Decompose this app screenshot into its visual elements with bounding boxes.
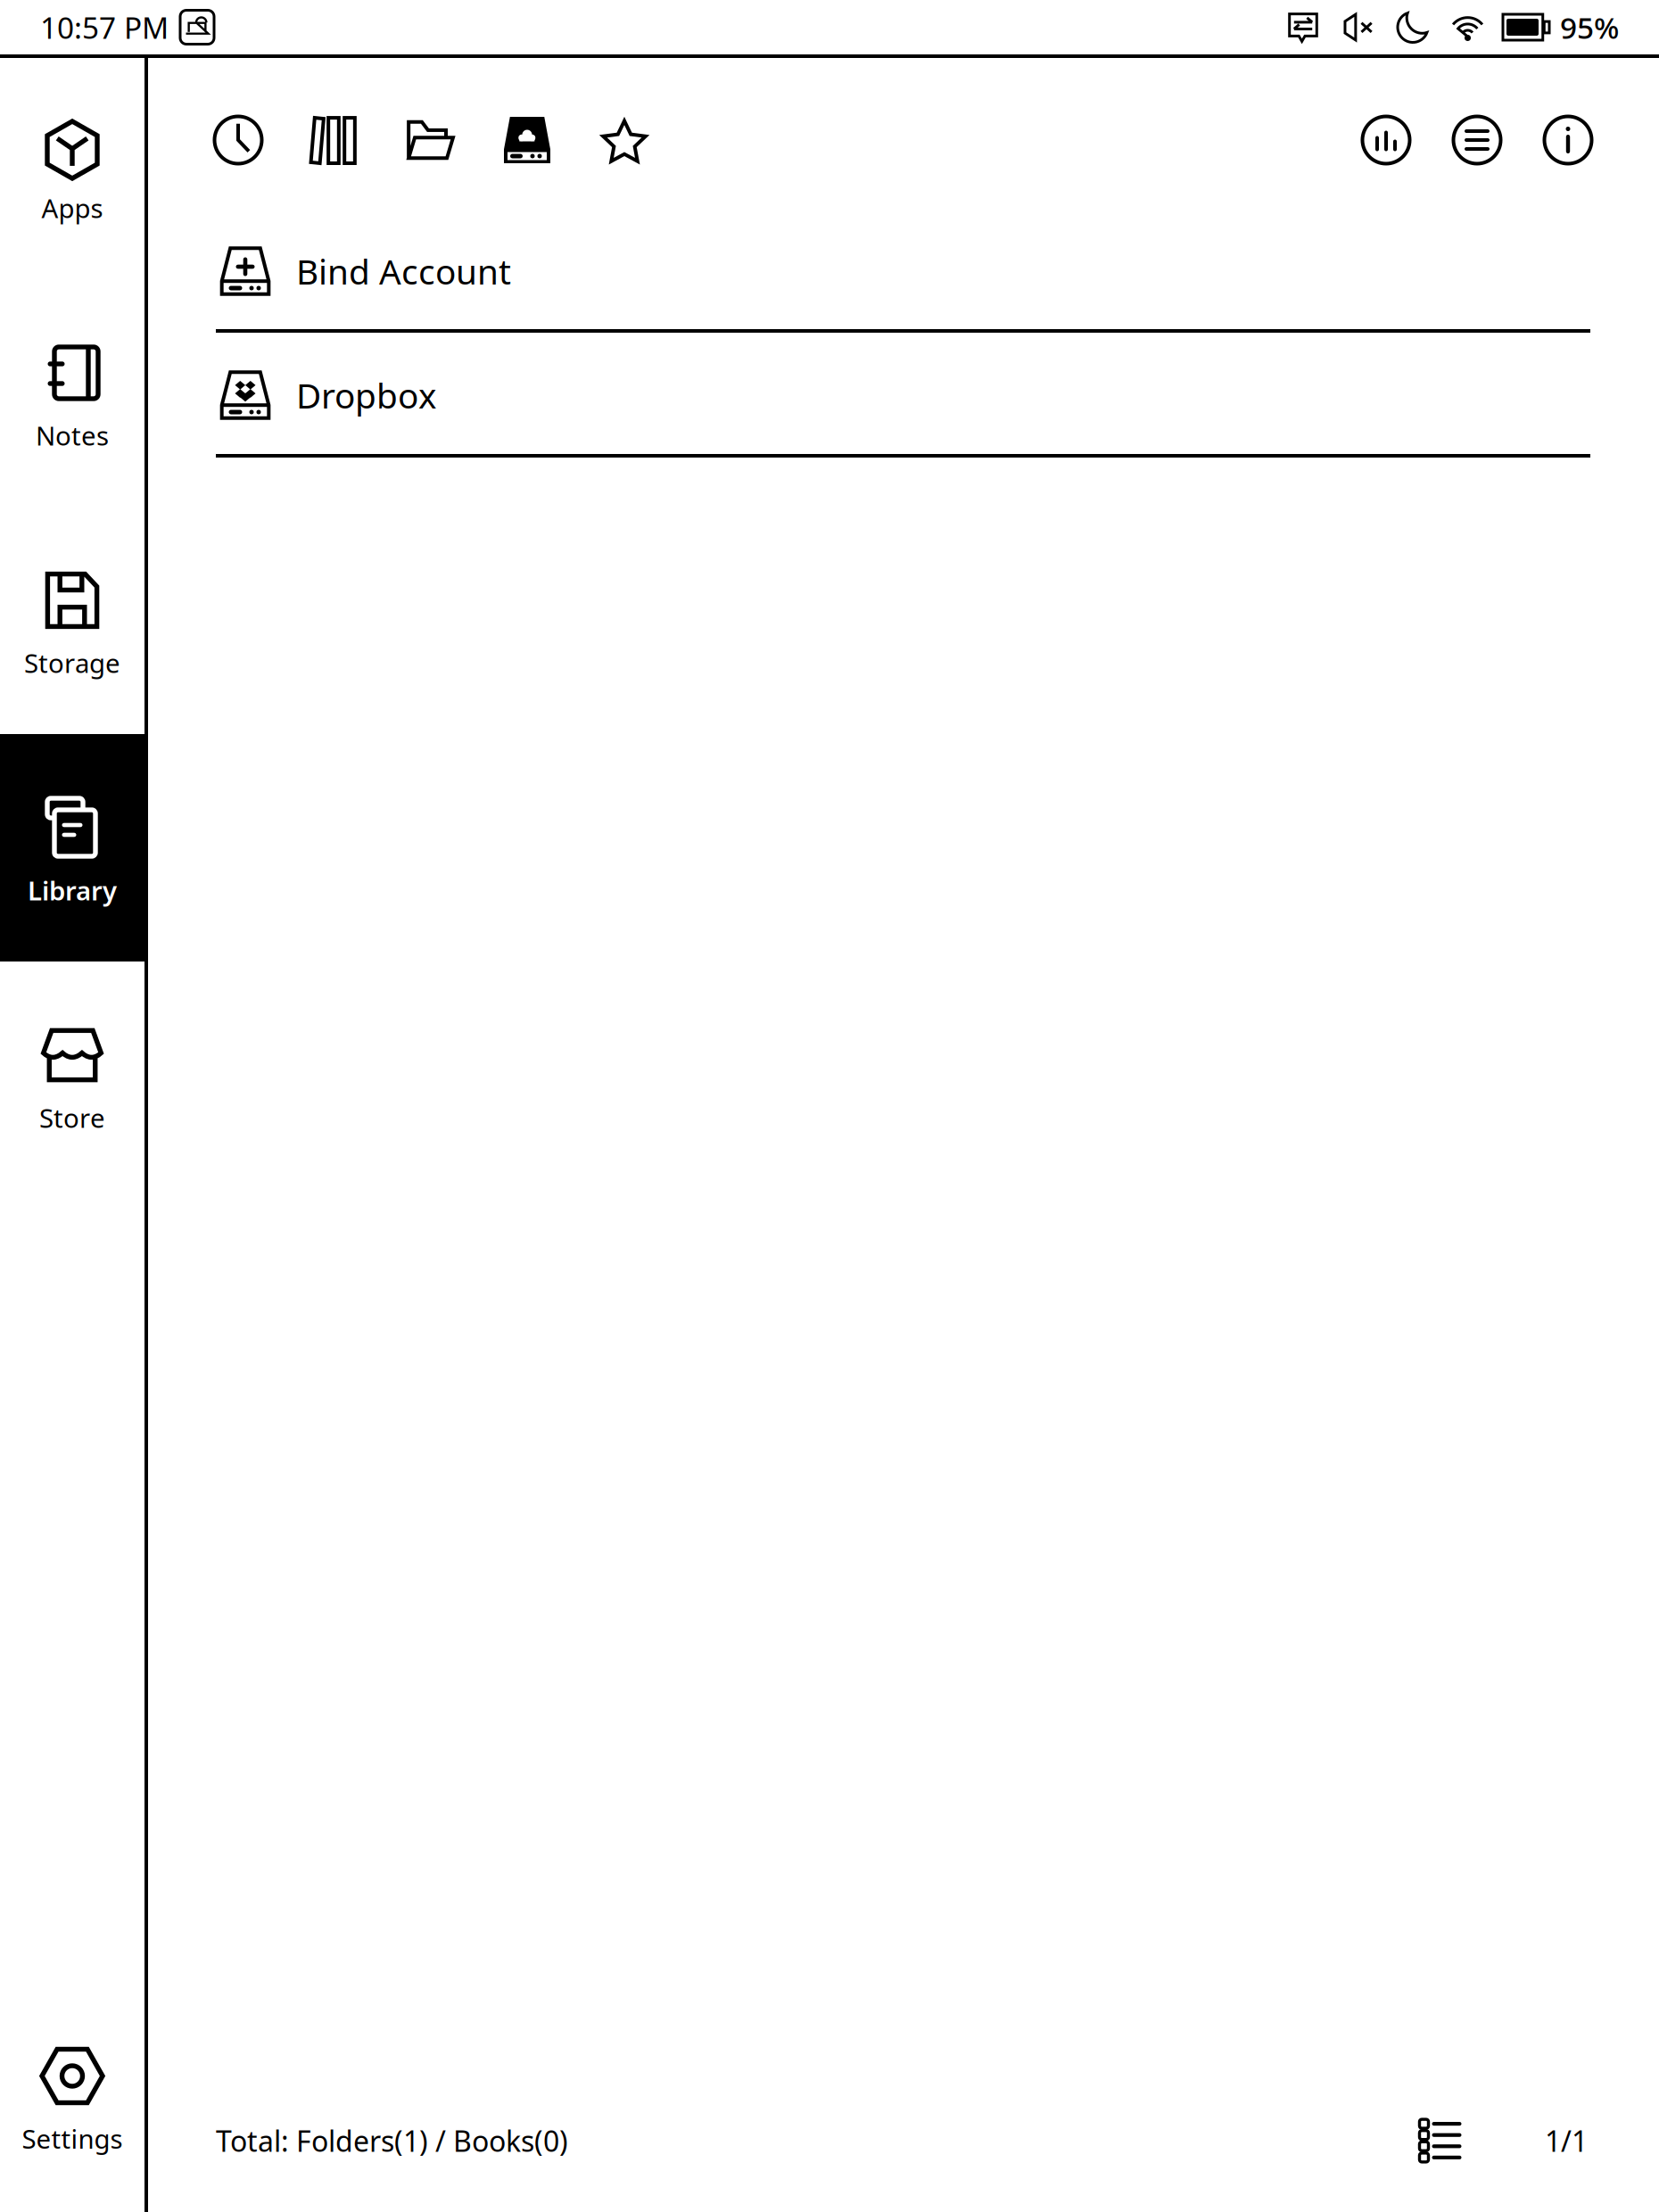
staticText: Store	[39, 1100, 105, 1135]
staticText: Settings	[22, 2121, 123, 2156]
button[interactable]: Dropbox	[216, 346, 1590, 444]
staticText: Apps	[41, 190, 103, 225]
staticText: Notes	[36, 418, 109, 453]
staticText: Bind Account	[296, 248, 511, 294]
staticText: Dropbox	[296, 372, 436, 418]
staticText: Total: Folders(1) / Books(0)	[216, 2122, 568, 2160]
button[interactable]: Storage	[0, 507, 144, 734]
button[interactable]: Notes	[0, 279, 144, 507]
button[interactable]: Menu	[1439, 102, 1515, 178]
button[interactable]: Recent	[200, 102, 276, 178]
staticText: 1/1	[1545, 2122, 1588, 2160]
button[interactable]: Settings	[0, 1982, 144, 2210]
button[interactable]: Cloud sync status	[179, 9, 215, 45]
button[interactable]: Statistics	[1348, 102, 1424, 178]
staticText: Library	[28, 873, 117, 908]
button[interactable]: Bind Account	[216, 222, 1590, 320]
button[interactable]: Favourites	[586, 102, 663, 178]
button[interactable]: Info	[1530, 102, 1606, 178]
staticText: Storage	[24, 645, 120, 680]
staticText: 95%	[1560, 7, 1619, 47]
button[interactable]: Folders	[392, 102, 468, 178]
button[interactable]: Books	[295, 102, 372, 178]
button[interactable]: View mode	[1405, 2105, 1476, 2176]
button[interactable]: Apps	[0, 52, 144, 279]
staticText: 10:57 PM	[40, 7, 169, 47]
button[interactable]: Cloud storage	[489, 102, 565, 178]
button[interactable]: Library	[0, 734, 144, 962]
button[interactable]: Store	[0, 962, 144, 1189]
